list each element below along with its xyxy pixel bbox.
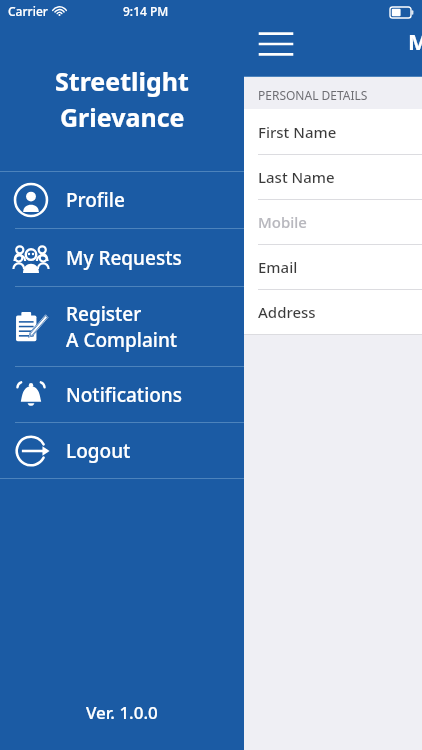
staticText: First Name: [258, 122, 337, 142]
staticText: Logout: [66, 438, 131, 464]
button[interactable]: Address: [244, 290, 422, 334]
staticText: 9:14 PM: [123, 3, 169, 19]
staticText: PERSONAL DETAILS: [258, 87, 368, 103]
button[interactable]: Notifications: [0, 367, 244, 422]
button[interactable]: Register A Complaint: [0, 287, 244, 366]
staticText: Ver. 1.0.0: [86, 701, 158, 724]
staticText: Grievance: [60, 100, 185, 134]
button[interactable]: My Requests: [0, 229, 244, 286]
button[interactable]: Logout: [0, 423, 244, 478]
staticText: Address: [258, 302, 316, 322]
staticText: Profile: [66, 187, 125, 213]
button[interactable]: Last Name: [244, 155, 422, 199]
button[interactable]: Open navigation menu: [252, 20, 300, 68]
button[interactable]: Profile: [0, 172, 244, 228]
button[interactable]: Email: [244, 245, 422, 289]
staticText: Email: [258, 257, 298, 277]
staticText: Last Name: [258, 167, 335, 187]
staticText: Carrier: [8, 3, 48, 19]
button[interactable]: Mobile: [244, 200, 422, 244]
staticText: M: [408, 26, 422, 56]
staticText: My Requests: [66, 245, 182, 271]
staticText: Streetlight: [55, 64, 189, 98]
staticText: Notifications: [66, 382, 183, 408]
button[interactable]: First Name: [244, 109, 422, 154]
staticText: Register A Complaint: [66, 301, 178, 352]
staticText: Mobile: [258, 212, 307, 232]
